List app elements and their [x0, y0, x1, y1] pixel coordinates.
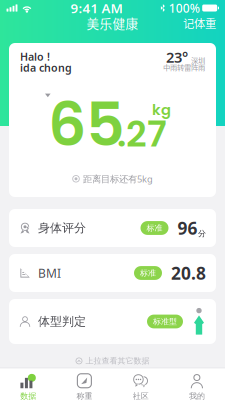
- button[interactable]: BMI: [9, 254, 216, 292]
- staticText: 96: [177, 216, 197, 239]
- staticText: Halo !: [20, 49, 50, 64]
- staticText: 我的: [189, 391, 205, 400]
- staticText: .27: [117, 109, 167, 159]
- staticText: 中雨转雷阵雨: [163, 62, 205, 72]
- staticText: 23°: [166, 47, 188, 67]
- staticText: BMI: [38, 265, 61, 281]
- staticText: 标准: [146, 223, 162, 233]
- staticText: 标准型: [153, 317, 177, 326]
- staticText: 美乐健康: [86, 14, 138, 32]
- button[interactable]: 记体重: [174, 10, 225, 36]
- staticText: 距离目标还有5kg: [83, 173, 153, 185]
- staticText: ida chong: [20, 60, 72, 75]
- staticText: 65: [48, 83, 125, 167]
- button[interactable]: 身体评分: [9, 209, 216, 247]
- staticText: 身体评分: [38, 221, 86, 235]
- staticText: 9:41 AM: [70, 0, 122, 17]
- staticText: 数据: [20, 391, 36, 400]
- button[interactable]: 我的: [169, 368, 225, 400]
- staticText: kg: [152, 100, 171, 120]
- staticText: 上拉查看其它数据: [86, 356, 150, 366]
- staticText: 100%: [169, 0, 200, 16]
- staticText: 社区: [133, 391, 149, 400]
- staticText: 记体重: [183, 15, 216, 31]
- staticText: 分: [198, 229, 206, 238]
- button[interactable]: 称重: [56, 368, 112, 400]
- staticText: 称重: [76, 391, 92, 400]
- button[interactable]: 数据: [0, 368, 56, 400]
- staticText: 深圳: [191, 55, 205, 65]
- button[interactable]: 体型判定: [9, 299, 216, 344]
- button[interactable]: 社区: [112, 368, 169, 400]
- staticText: 体型判定: [38, 314, 86, 329]
- staticText: 标准: [140, 268, 156, 278]
- staticText: 20.8: [171, 261, 206, 284]
